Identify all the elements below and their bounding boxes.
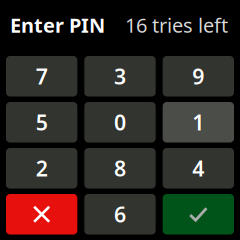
button[interactable]: 4 bbox=[163, 148, 234, 188]
button[interactable]: Cancel bbox=[6, 194, 77, 234]
button[interactable]: Confirm bbox=[163, 194, 234, 234]
button[interactable]: 5 bbox=[6, 102, 77, 142]
staticText: 8 bbox=[114, 154, 126, 182]
staticText: 6 bbox=[114, 200, 126, 228]
staticText: 7 bbox=[36, 62, 48, 90]
staticText: 1 bbox=[192, 108, 204, 136]
button[interactable]: 3 bbox=[84, 56, 156, 96]
staticText: 4 bbox=[192, 154, 204, 182]
staticText: 3 bbox=[114, 62, 126, 90]
staticText: Enter PIN bbox=[10, 12, 105, 38]
button[interactable]: 7 bbox=[6, 56, 77, 96]
button[interactable]: 8 bbox=[84, 148, 156, 188]
staticText: 9 bbox=[192, 62, 204, 90]
staticText: 0 bbox=[114, 108, 126, 136]
button[interactable]: 2 bbox=[6, 148, 77, 188]
button[interactable]: 9 bbox=[163, 56, 234, 96]
staticText: 2 bbox=[36, 154, 48, 182]
button[interactable]: 1 bbox=[163, 102, 234, 142]
button[interactable]: 0 bbox=[84, 102, 156, 142]
staticText: 5 bbox=[36, 108, 48, 136]
button[interactable]: 6 bbox=[84, 194, 156, 234]
staticText: 16 tries left bbox=[125, 12, 228, 38]
